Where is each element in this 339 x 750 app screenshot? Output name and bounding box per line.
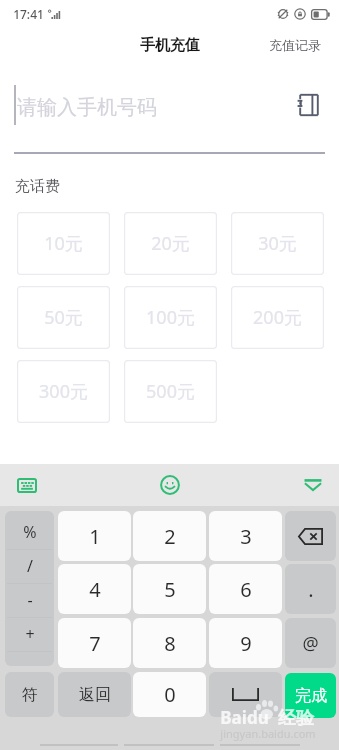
staticText: Baidu <box>220 706 269 729</box>
staticText: @ <box>302 631 319 656</box>
staticText: 返回 <box>79 685 111 705</box>
button[interactable]: / <box>5 549 54 583</box>
button[interactable]: 充值记录 <box>259 30 339 61</box>
button[interactable]: 完成 <box>285 673 336 718</box>
staticText: 充话费 <box>15 177 60 196</box>
button[interactable]: 2 <box>133 511 206 561</box>
button[interactable]: 7 <box>58 618 131 668</box>
button[interactable]: 20元 <box>124 212 217 275</box>
button[interactable]: 200元 <box>231 286 324 349</box>
button[interactable]: Backspace <box>285 511 336 561</box>
staticText: + <box>25 623 35 645</box>
staticText: 300元 <box>39 379 88 404</box>
button[interactable]: 8 <box>133 618 206 668</box>
button[interactable]: + <box>5 617 54 651</box>
button[interactable]: . <box>285 564 336 614</box>
button[interactable]: 100元 <box>124 286 217 349</box>
staticText: 7 <box>89 630 101 657</box>
button[interactable]: 30元 <box>231 212 324 275</box>
staticText: 完成 <box>295 686 327 706</box>
button[interactable]: 10元 <box>17 212 110 275</box>
staticText: 8 <box>164 630 176 657</box>
staticText: 10元 <box>44 231 83 256</box>
button[interactable]: 50元 <box>17 286 110 349</box>
button[interactable]: 返回 <box>58 672 131 717</box>
staticText: 100元 <box>146 305 195 330</box>
staticText: 1 <box>89 523 101 550</box>
staticText: 20元 <box>151 231 190 256</box>
staticText: 手机充值 <box>140 36 200 55</box>
staticText: 500元 <box>146 379 195 404</box>
button[interactable]: 3 <box>209 511 282 561</box>
staticText: 50元 <box>44 305 83 330</box>
staticText: . <box>308 576 314 603</box>
button[interactable]: Emoji <box>156 471 184 499</box>
staticText: 6 <box>240 576 252 603</box>
staticText: 经验 <box>278 707 314 730</box>
staticText: / <box>27 555 33 577</box>
button[interactable]: Space <box>209 672 282 717</box>
staticText: 9 <box>240 630 252 657</box>
staticText: 符 <box>22 685 38 705</box>
button[interactable]: 符 <box>5 672 54 717</box>
button[interactable]: @ <box>285 618 336 668</box>
staticText: 200元 <box>253 305 302 330</box>
staticText: - <box>27 589 33 611</box>
staticText: 0 <box>164 681 176 708</box>
button[interactable]: 1 <box>58 511 131 561</box>
staticText: 5 <box>164 576 176 603</box>
button[interactable]: 5 <box>133 564 206 614</box>
button[interactable]: 4 <box>58 564 131 614</box>
staticText: 3 <box>240 523 252 550</box>
button[interactable]: 300元 <box>17 360 110 423</box>
button[interactable]: 9 <box>209 618 282 668</box>
button[interactable]: % <box>5 515 54 549</box>
staticText: 17:41 <box>13 6 44 22</box>
button[interactable]: Hide keyboard <box>299 471 327 499</box>
staticText: 4 <box>89 576 101 603</box>
staticText: 请输入手机号码 <box>17 95 157 120</box>
button[interactable]: Contacts <box>291 88 325 122</box>
staticText: 充值记录 <box>269 37 321 53</box>
staticText: 2 <box>164 523 176 550</box>
button[interactable]: 6 <box>209 564 282 614</box>
staticText: 30元 <box>258 231 297 256</box>
staticText: jingyan.baidu.com <box>220 726 316 741</box>
staticText: % <box>23 521 37 543</box>
button[interactable]: Switch keyboard <box>13 471 41 499</box>
button[interactable]: - <box>5 583 54 617</box>
button[interactable]: 0 <box>133 672 206 717</box>
button[interactable]: 500元 <box>124 360 217 423</box>
